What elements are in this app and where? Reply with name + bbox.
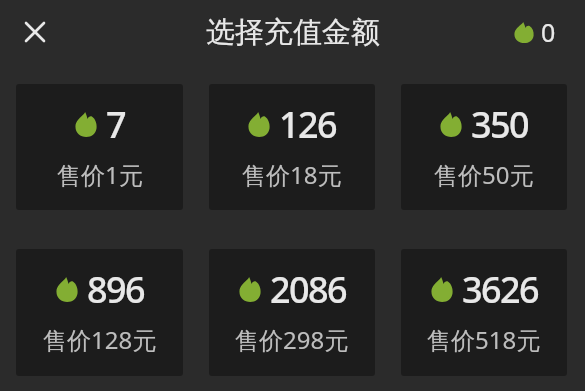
button[interactable]: 0	[514, 15, 556, 49]
button[interactable]: 2086	[209, 249, 375, 376]
button[interactable]: 896	[16, 249, 183, 376]
button[interactable]: 7	[16, 84, 183, 210]
staticText: 售价298元	[235, 323, 349, 356]
staticText: 选择充值金额	[206, 14, 380, 51]
button[interactable]: Close	[16, 13, 54, 51]
staticText: 售价518元	[427, 323, 541, 356]
button[interactable]: 126	[209, 84, 375, 210]
button[interactable]: 350	[401, 84, 567, 210]
staticText: 3626	[462, 265, 538, 314]
staticText: 售价50元	[434, 158, 534, 191]
staticText: 896	[87, 265, 144, 314]
staticText: 350	[471, 100, 528, 149]
staticText: 7	[106, 100, 125, 149]
staticText: 126	[279, 100, 336, 149]
staticText: 0	[541, 15, 556, 49]
staticText: 售价128元	[43, 323, 157, 356]
staticText: 售价18元	[242, 158, 342, 191]
staticText: 售价1元	[57, 158, 143, 191]
button[interactable]: 3626	[401, 249, 567, 376]
staticText: 2086	[270, 265, 346, 314]
